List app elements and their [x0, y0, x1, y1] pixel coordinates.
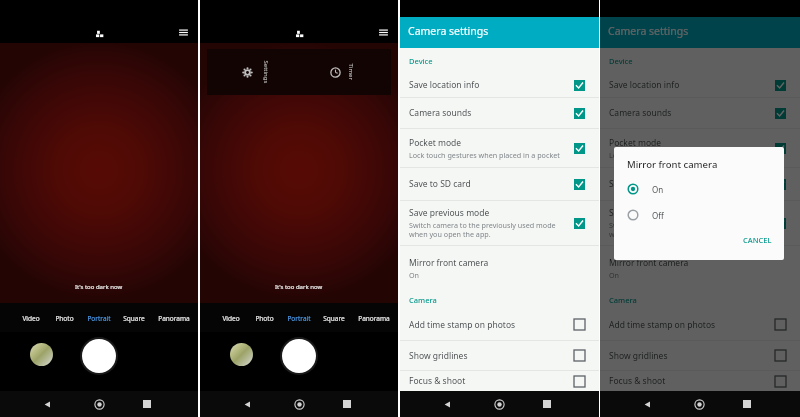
button[interactable]: More options — [373, 22, 393, 42]
button[interactable]: CANCEL — [739, 232, 776, 248]
staticText: On — [652, 184, 664, 195]
button[interactable]: Save location info — [600, 73, 800, 97]
button[interactable]: Recents — [737, 391, 757, 417]
staticText: Mirror front camera — [409, 257, 489, 269]
button[interactable]: Save location info — [400, 73, 599, 97]
staticText: CANCEL — [743, 235, 772, 245]
staticText: Photo — [55, 314, 74, 323]
button[interactable]: Pocket mode — [600, 129, 800, 167]
staticText: Switch camera to the previously used mod… — [609, 220, 756, 239]
button[interactable]: Save to SD card — [600, 168, 800, 200]
staticText: Save location info — [609, 79, 680, 91]
button[interactable]: Settings — [241, 66, 277, 78]
staticText: Camera sounds — [409, 107, 472, 119]
staticText: Square — [123, 314, 145, 323]
staticText: Device — [609, 56, 633, 66]
button[interactable]: Video — [14, 310, 48, 326]
button[interactable]: Add time stamp on photos — [600, 309, 800, 340]
button[interactable]: Recents — [137, 391, 157, 417]
button[interactable]: Pocket mode — [400, 129, 599, 167]
button[interactable]: On — [614, 178, 784, 200]
staticText: Video — [222, 314, 240, 323]
button[interactable]: Back — [37, 391, 57, 417]
staticText: It's too dark now — [275, 283, 323, 291]
button[interactable]: Photo — [247, 310, 281, 326]
staticText: Video — [22, 314, 40, 323]
button[interactable]: Timer — [329, 66, 359, 78]
button[interactable]: Add time stamp on photos — [400, 309, 599, 340]
button[interactable]: Home — [689, 391, 709, 417]
staticText: Off — [652, 210, 664, 221]
staticText: It's too dark now — [75, 283, 123, 291]
button[interactable]: More options — [173, 22, 193, 42]
staticText: Lock touch gestures when placed in a poc… — [609, 150, 760, 160]
staticText: Save previous mode — [409, 207, 490, 219]
button[interactable]: Mirror front camera — [600, 246, 800, 285]
staticText: Camera settings — [608, 24, 689, 38]
staticText: Square — [323, 314, 345, 323]
button[interactable]: Panorama — [357, 310, 391, 326]
button[interactable]: Video — [214, 310, 248, 326]
staticText: Camera — [609, 295, 637, 305]
staticText: Photo — [255, 314, 274, 323]
button[interactable]: Shutter — [80, 337, 118, 375]
staticText: Settings — [261, 60, 269, 83]
staticText: Save previous mode — [609, 207, 690, 219]
staticText: Lock touch gestures when placed in a poc… — [409, 150, 560, 160]
staticText: Focus & shoot — [609, 375, 666, 387]
button[interactable]: Save previous mode — [600, 201, 800, 245]
staticText: Camera — [409, 295, 437, 305]
staticText: Pocket mode — [409, 137, 462, 149]
staticText: Save to SD card — [609, 178, 671, 190]
staticText: Camera settings — [408, 24, 489, 38]
button[interactable]: Show gridlines — [600, 341, 800, 370]
button[interactable]: Recents — [337, 391, 357, 417]
button[interactable]: Camera sounds — [600, 98, 800, 128]
button[interactable]: Focus & shoot — [600, 371, 800, 391]
staticText: Mirror front camera — [609, 257, 689, 269]
staticText: Portrait — [87, 314, 111, 323]
button[interactable]: Focus & shoot — [400, 371, 599, 391]
button[interactable]: Flash — [289, 23, 309, 43]
button[interactable]: Portrait — [82, 310, 116, 326]
staticText: Show gridlines — [609, 350, 668, 362]
button[interactable]: Home — [89, 391, 109, 417]
staticText: Save location info — [409, 79, 480, 91]
staticText: Add time stamp on photos — [409, 319, 516, 331]
button[interactable]: Photo — [47, 310, 81, 326]
staticText: Show gridlines — [409, 350, 468, 362]
staticText: Device — [409, 56, 433, 66]
button[interactable]: Flash — [89, 23, 109, 43]
button[interactable]: Home — [289, 391, 309, 417]
button[interactable]: Back — [637, 391, 657, 417]
button[interactable]: Show gridlines — [400, 341, 599, 370]
staticText: Mirror front camera — [627, 158, 718, 171]
button[interactable]: Portrait — [282, 310, 316, 326]
button[interactable]: Save to SD card — [400, 168, 599, 200]
staticText: On — [609, 270, 620, 280]
button[interactable]: Mirror front camera — [400, 246, 599, 285]
staticText: Portrait — [287, 314, 311, 323]
button[interactable]: Panorama — [157, 310, 191, 326]
button[interactable]: Shutter — [280, 337, 318, 375]
button[interactable]: Off — [614, 204, 784, 226]
staticText: Add time stamp on photos — [609, 319, 716, 331]
staticText: Camera sounds — [609, 107, 672, 119]
staticText: Save to SD card — [409, 178, 471, 190]
staticText: Panorama — [158, 314, 190, 323]
button[interactable]: Recents — [537, 391, 557, 417]
button[interactable]: Back — [237, 391, 257, 417]
button[interactable]: Square — [117, 310, 151, 326]
staticText: Timer — [346, 63, 354, 80]
button[interactable]: Last photo — [30, 343, 53, 366]
button[interactable]: Home — [489, 391, 509, 417]
staticText: Pocket mode — [609, 137, 662, 149]
button[interactable]: Square — [317, 310, 351, 326]
button[interactable]: Camera sounds — [400, 98, 599, 128]
staticText: On — [409, 270, 420, 280]
staticText: Panorama — [358, 314, 390, 323]
button[interactable]: Last photo — [230, 343, 253, 366]
button[interactable]: Back — [437, 391, 457, 417]
button[interactable]: Save previous mode — [400, 201, 599, 245]
staticText: Switch camera to the previously used mod… — [409, 220, 556, 239]
